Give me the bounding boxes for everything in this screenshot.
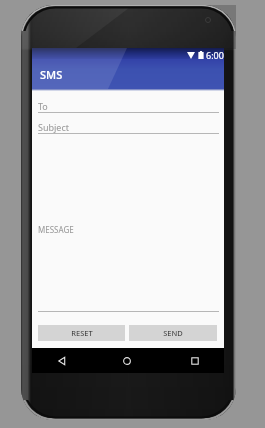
staticText: To [38, 100, 48, 112]
button[interactable]: RESET [38, 325, 125, 341]
staticText: SEND [163, 328, 183, 338]
staticText: SMS [40, 67, 63, 82]
staticText: RESET [71, 328, 93, 338]
staticText: 6:00 [206, 49, 224, 60]
button[interactable]: Recents [187, 353, 203, 369]
button[interactable]: SEND [129, 325, 217, 341]
staticText: Subject [38, 121, 70, 133]
button[interactable]: Home [119, 353, 135, 369]
staticText: MESSAGE [38, 224, 74, 235]
button[interactable]: Back [54, 353, 70, 369]
